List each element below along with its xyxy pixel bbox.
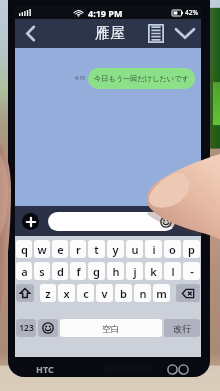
button[interactable]: h	[107, 262, 124, 280]
staticText: a	[21, 264, 28, 279]
button[interactable]: Shift	[16, 284, 34, 302]
staticText: r	[76, 242, 81, 257]
button[interactable]: p	[183, 240, 200, 258]
staticText: y	[112, 242, 119, 257]
button[interactable]: Notes	[141, 19, 170, 48]
button[interactable]: Send	[181, 214, 195, 228]
button[interactable]: 改行	[164, 319, 200, 337]
staticText: n	[139, 286, 147, 301]
button[interactable]: q	[16, 240, 32, 258]
button[interactable]: Back	[15, 19, 45, 48]
button[interactable]	[48, 212, 175, 231]
button[interactable]: f	[70, 262, 86, 280]
staticText: j	[133, 264, 137, 279]
staticText: g	[93, 264, 100, 279]
button[interactable]: v	[96, 284, 113, 302]
button[interactable]: b	[115, 284, 132, 302]
staticText: 改行	[173, 323, 191, 334]
button[interactable]: y	[107, 240, 124, 258]
button[interactable]: j	[126, 262, 143, 280]
button[interactable]: 空白	[60, 319, 162, 337]
staticText: x	[63, 286, 70, 301]
staticText: p	[188, 242, 195, 257]
button[interactable]: u	[126, 240, 143, 258]
button[interactable]: n	[134, 284, 151, 302]
staticText: t	[94, 242, 99, 257]
button[interactable]: -	[183, 262, 200, 280]
staticText: -	[190, 264, 194, 279]
button[interactable]: s	[34, 262, 50, 280]
staticText: e	[57, 242, 64, 257]
button[interactable]: Add attachment	[22, 213, 39, 230]
staticText: l	[171, 264, 175, 279]
staticText: 今日もう一回だけしたいです	[94, 74, 189, 83]
button[interactable]: z	[40, 284, 56, 302]
button[interactable]: c	[77, 284, 94, 302]
staticText: c	[83, 286, 89, 301]
staticText: m	[156, 286, 167, 301]
staticText: 123	[19, 322, 34, 334]
button[interactable]: m	[153, 284, 170, 302]
staticText: 空白	[102, 323, 120, 334]
button[interactable]: e	[52, 240, 68, 258]
button[interactable]: Backspace	[176, 284, 200, 302]
button[interactable]: a	[16, 262, 32, 280]
button[interactable]: g	[88, 262, 105, 280]
staticText: q	[21, 242, 28, 257]
staticText: k	[150, 264, 157, 279]
button[interactable]: d	[52, 262, 68, 280]
button[interactable]: w	[34, 240, 50, 258]
staticText: 4:19	[75, 75, 85, 82]
staticText: b	[120, 286, 127, 301]
button[interactable]: x	[58, 284, 75, 302]
staticText: d	[57, 264, 64, 279]
button[interactable]: t	[88, 240, 105, 258]
button[interactable]: o	[164, 240, 181, 258]
staticText: HTC	[36, 363, 54, 375]
staticText: s	[39, 264, 45, 279]
button[interactable]: Expand	[170, 19, 199, 48]
button[interactable]: r	[70, 240, 86, 258]
staticText: o	[169, 242, 176, 257]
button[interactable]: 123	[16, 319, 36, 337]
staticText: 4:19 PM	[88, 7, 123, 19]
staticText: u	[131, 242, 139, 257]
staticText: 42%	[185, 8, 198, 17]
button[interactable]: l	[164, 262, 181, 280]
staticText: 雁屋	[95, 24, 125, 43]
button[interactable]: i	[145, 240, 162, 258]
staticText: v	[101, 286, 108, 301]
staticText: w	[37, 242, 47, 257]
staticText: i	[152, 242, 156, 257]
button[interactable]: Emoji	[38, 319, 58, 337]
staticText: h	[112, 264, 120, 279]
staticText: z	[45, 286, 51, 301]
button[interactable]: k	[145, 262, 162, 280]
staticText: f	[76, 264, 81, 279]
